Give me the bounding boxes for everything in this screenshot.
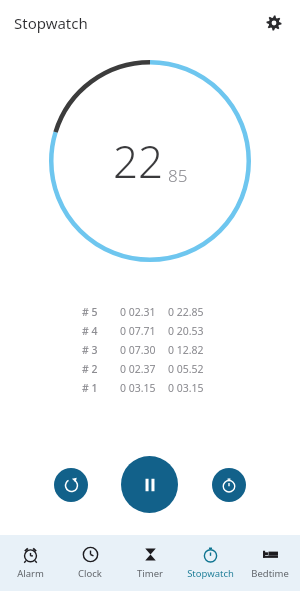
staticText: 0 07.30 — [120, 343, 162, 357]
button[interactable]: # 2 — [0, 359, 300, 378]
button[interactable]: Alarm — [0, 535, 60, 591]
staticText: 0 02.31 — [120, 305, 162, 319]
button[interactable]: Settings — [258, 7, 290, 39]
staticText: Stopwatch — [14, 13, 88, 33]
staticText: Timer — [137, 567, 163, 580]
staticText: 0 02.37 — [120, 362, 162, 376]
staticText: 0 05.52 — [168, 362, 204, 376]
button[interactable]: Stopwatch — [180, 535, 240, 591]
staticText: # 1 — [82, 381, 112, 395]
button[interactable]: Reset — [54, 468, 88, 502]
button[interactable]: Bedtime — [240, 535, 300, 591]
staticText: Clock — [78, 567, 102, 580]
staticText: # 3 — [82, 343, 112, 357]
staticText: 0 03.15 — [168, 381, 204, 395]
staticText: 0 07.71 — [120, 324, 162, 338]
staticText: Bedtime — [251, 567, 289, 580]
button[interactable]: # 3 — [0, 340, 300, 359]
staticText: 85 — [168, 164, 188, 187]
staticText: # 2 — [82, 362, 112, 376]
staticText: 0 20.53 — [168, 324, 204, 338]
staticText: Alarm — [17, 567, 44, 580]
staticText: # 4 — [82, 324, 112, 338]
button[interactable]: # 4 — [0, 321, 300, 340]
staticText: 22 — [113, 131, 164, 191]
staticText: Stopwatch — [187, 567, 234, 580]
button[interactable]: # 1 — [0, 378, 300, 397]
button[interactable]: # 5 — [0, 302, 300, 321]
staticText: # 5 — [82, 305, 112, 319]
staticText: 0 22.85 — [168, 305, 204, 319]
staticText: 0 12.82 — [168, 343, 204, 357]
button[interactable]: Pause — [121, 456, 178, 513]
button[interactable]: Lap — [212, 468, 246, 502]
button[interactable]: Timer — [120, 535, 180, 591]
staticText: 0 03.15 — [120, 381, 162, 395]
button[interactable]: Clock — [60, 535, 120, 591]
